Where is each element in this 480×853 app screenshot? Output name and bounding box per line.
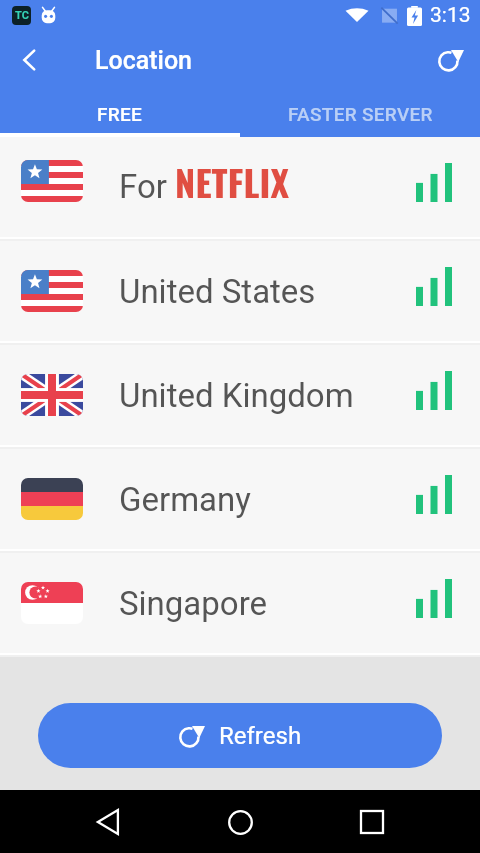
staticText: For NETFLIX (119, 155, 290, 208)
staticText: 3:13 (430, 3, 471, 28)
button[interactable]: Singapore (0, 553, 480, 653)
button[interactable]: United States (0, 241, 480, 341)
staticText: Refresh (219, 722, 302, 750)
button[interactable]: Recents (348, 798, 396, 846)
button[interactable]: Germany (0, 449, 480, 549)
button[interactable]: Home (216, 798, 264, 846)
button[interactable]: Refresh (422, 31, 480, 89)
staticText: FASTER SERVER (288, 103, 433, 125)
button[interactable]: Back (0, 31, 58, 89)
staticText: Location (95, 46, 193, 75)
staticText: United Kingdom (119, 376, 354, 415)
staticText: FREE (97, 103, 143, 125)
button[interactable]: United Kingdom (0, 345, 480, 445)
staticText: Singapore (119, 584, 268, 623)
button[interactable]: FASTER SERVER (240, 90, 480, 137)
staticText: Germany (119, 480, 251, 519)
staticText: TC (15, 9, 29, 22)
button[interactable]: For NETFLIX (0, 137, 480, 237)
button[interactable]: Refresh (38, 703, 442, 768)
button[interactable]: FREE (0, 90, 240, 137)
staticText: United States (119, 272, 316, 311)
button[interactable]: Back (84, 798, 132, 846)
